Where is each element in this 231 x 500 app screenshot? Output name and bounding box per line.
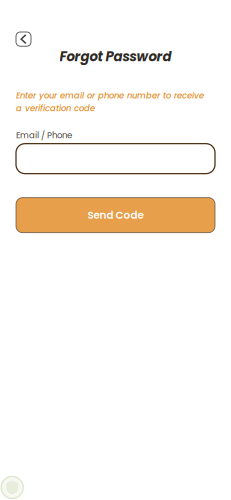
button[interactable]: Back: [16, 32, 31, 46]
staticText: Email / Phone: [16, 129, 72, 141]
staticText: a verification code: [16, 102, 95, 114]
staticText: Send Code: [87, 208, 143, 222]
staticText: Forgot Password: [59, 47, 171, 66]
button[interactable]: Send Code: [16, 198, 215, 233]
staticText: Enter your email or phone number to rece…: [16, 90, 204, 102]
